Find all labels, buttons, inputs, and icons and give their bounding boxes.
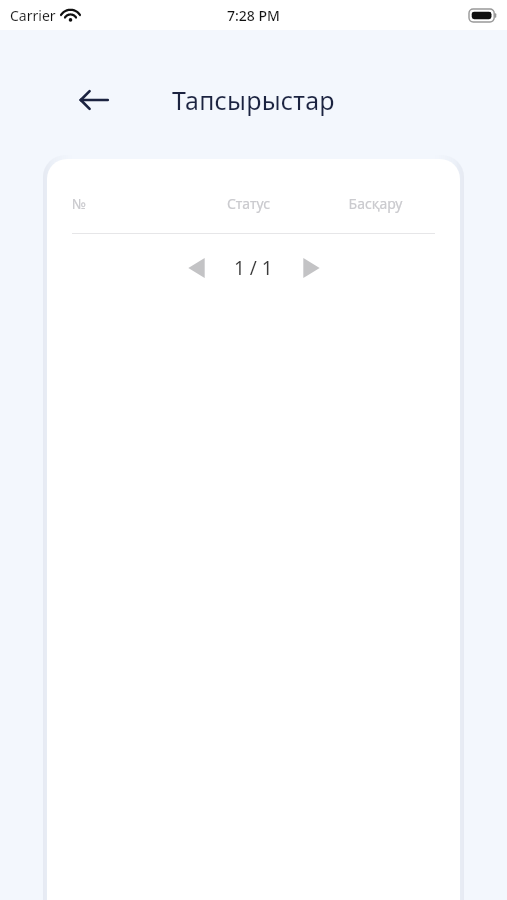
staticText: Статус: [181, 194, 316, 213]
staticText: 7:28 PM: [227, 6, 280, 25]
button[interactable]: Next page: [293, 250, 329, 286]
staticText: Carrier: [10, 6, 56, 25]
button[interactable]: Previous page: [178, 250, 214, 286]
staticText: 1 / 1: [234, 255, 273, 281]
button[interactable]: Back: [72, 78, 116, 122]
staticText: Басқару: [316, 194, 435, 213]
staticText: Тапсырыстар: [172, 83, 335, 117]
staticText: №: [72, 194, 181, 213]
